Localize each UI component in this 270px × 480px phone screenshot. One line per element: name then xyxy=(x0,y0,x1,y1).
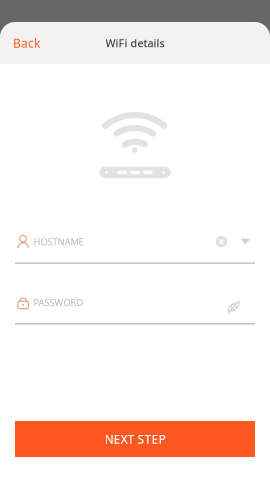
button[interactable]: NEXT STEP xyxy=(15,421,255,457)
button[interactable]: Show password xyxy=(226,296,241,308)
button[interactable]: Clear hostname xyxy=(216,236,227,247)
button[interactable]: Back xyxy=(0,25,52,61)
staticText: NEXT STEP xyxy=(104,431,165,447)
staticText: WiFi details xyxy=(105,36,164,50)
staticText: PASSWORD xyxy=(33,296,83,308)
staticText: HOSTNAME xyxy=(33,235,83,248)
button[interactable]: Show hostname suggestions xyxy=(240,239,250,244)
staticText: Back xyxy=(13,35,40,51)
